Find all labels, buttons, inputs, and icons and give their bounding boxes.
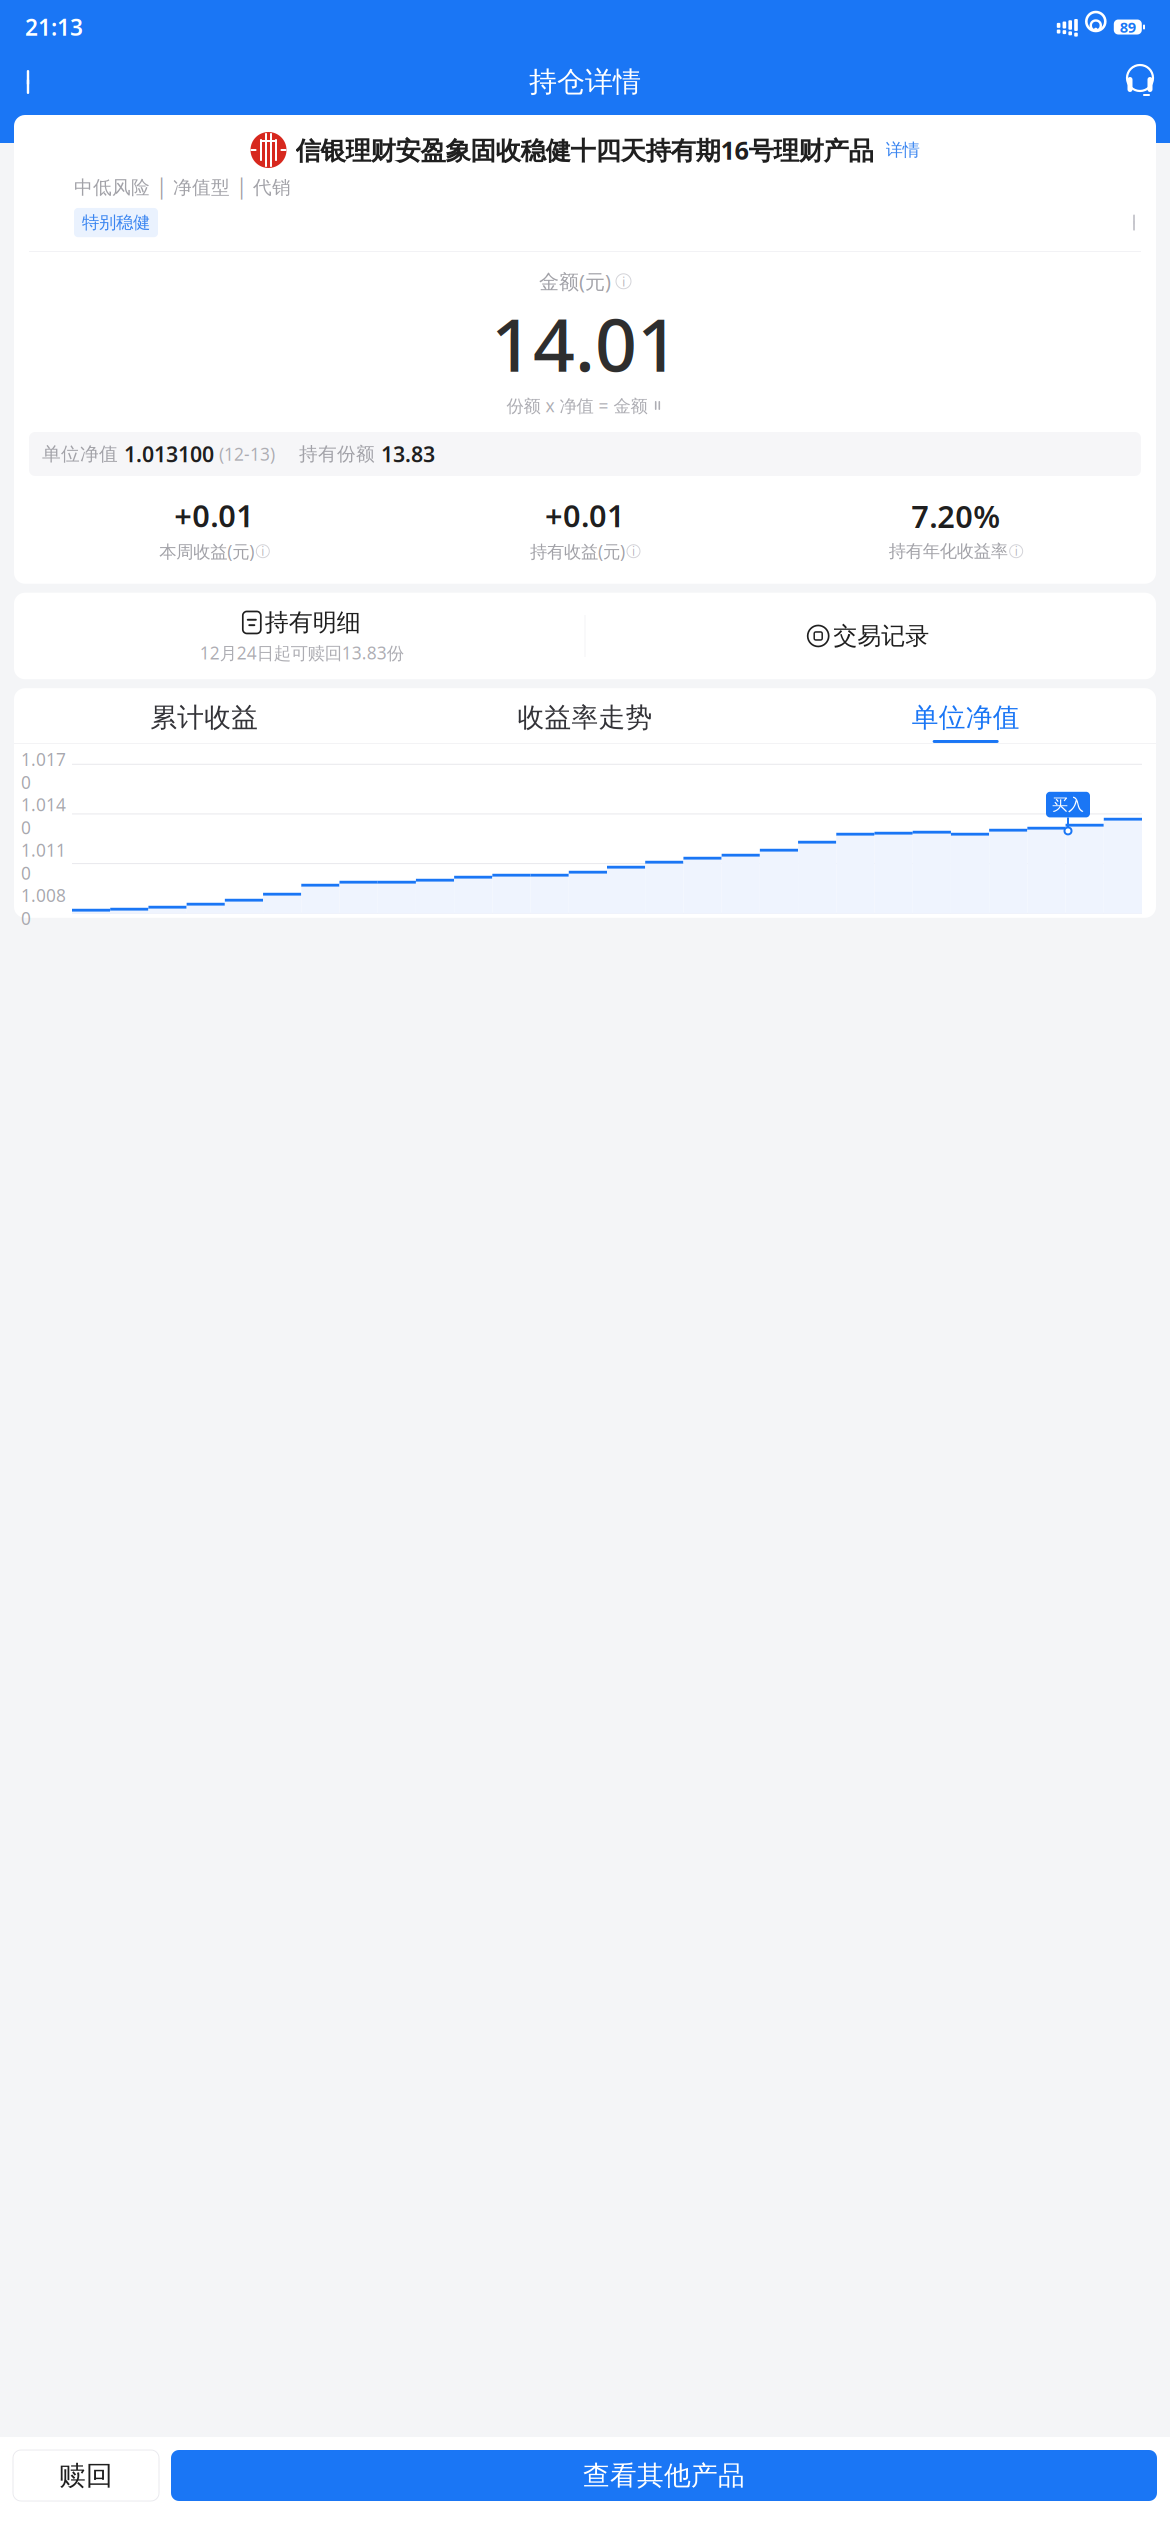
staticText: (12-13) (214, 442, 275, 465)
staticText: 单位净值 (42, 442, 118, 465)
staticText: 买入 (1052, 795, 1084, 814)
staticText: 持有份额 (299, 442, 375, 465)
button[interactable]: 份额 x 净值 = 金额 (506, 392, 663, 419)
staticText: 12月24日起可赎回13.83份 (200, 641, 404, 664)
button[interactable]: 持有明细 (19, 593, 585, 679)
staticText: 本周收益(元) (159, 540, 254, 563)
button[interactable]: 特别稳健 (74, 208, 158, 237)
button[interactable]: 单位净值 (775, 688, 1156, 743)
staticText: 1.0080 (21, 884, 66, 930)
staticText: 1.013100 (118, 440, 214, 468)
staticText: 份额 x 净值 = 金额 (506, 394, 647, 417)
staticText: 详情 (885, 139, 919, 161)
staticText: 单位净值 (912, 701, 1020, 734)
staticText: 持仓详情 (529, 65, 641, 99)
staticText: i (622, 272, 625, 290)
staticText: 赎回 (59, 2459, 113, 2492)
button[interactable]: 赎回 (13, 2450, 159, 2501)
button[interactable]: 金额(元) (539, 268, 631, 295)
staticText: 14.01 (491, 295, 679, 392)
staticText: 1.0170 (21, 748, 66, 794)
staticText: i (261, 543, 264, 559)
staticText: 持有年化收益率 (889, 541, 1008, 562)
staticText: 21:13 (25, 12, 83, 42)
staticText: 累计收益 (150, 701, 258, 734)
staticText: 中低风险 │ 净值型 │ 代销 (74, 176, 291, 199)
staticText: +0.01 (545, 495, 625, 536)
staticText: 特别稳健 (82, 212, 150, 233)
staticText: 持有收益(元) (530, 540, 625, 563)
button[interactable]: 返回 (6, 58, 54, 106)
staticText: 交易记录 (833, 621, 929, 651)
button[interactable]: 查看其他产品 (171, 2450, 1157, 2501)
button[interactable]: 详情 (882, 135, 919, 165)
staticText: 收益率走势 (517, 701, 652, 734)
staticText: +0.01 (174, 495, 254, 536)
button[interactable]: 收益率走势 (395, 688, 775, 743)
staticText: 持有明细 (265, 608, 361, 637)
staticText: 查看其他产品 (583, 2459, 745, 2492)
staticText: i (632, 543, 635, 559)
staticText: 13.83 (375, 440, 435, 468)
button[interactable]: 客服 (1116, 58, 1164, 106)
staticText: 1.0110 (21, 838, 66, 884)
button[interactable]: 交易记录 (585, 606, 1151, 666)
staticText: 1.0140 (21, 793, 66, 839)
staticText: 金额(元) (539, 268, 611, 295)
staticText: i (1015, 543, 1018, 559)
staticText: 89 (1120, 17, 1136, 37)
staticText: 信银理财安盈象固收稳健十四天持有期16号理财产品 (295, 133, 873, 167)
button[interactable]: 累计收益 (14, 688, 395, 743)
staticText: 7.20% (911, 496, 1000, 536)
